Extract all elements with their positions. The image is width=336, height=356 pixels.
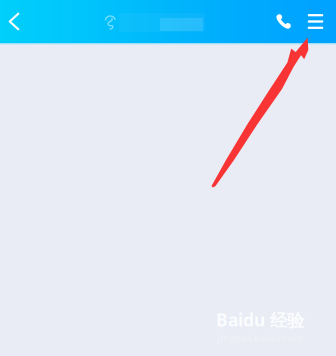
button[interactable]: Back (0, 0, 30, 43)
button[interactable]: Call (264, 0, 302, 43)
staticText: Baidu 经验 (216, 308, 304, 331)
button[interactable]: Menu (298, 0, 332, 43)
